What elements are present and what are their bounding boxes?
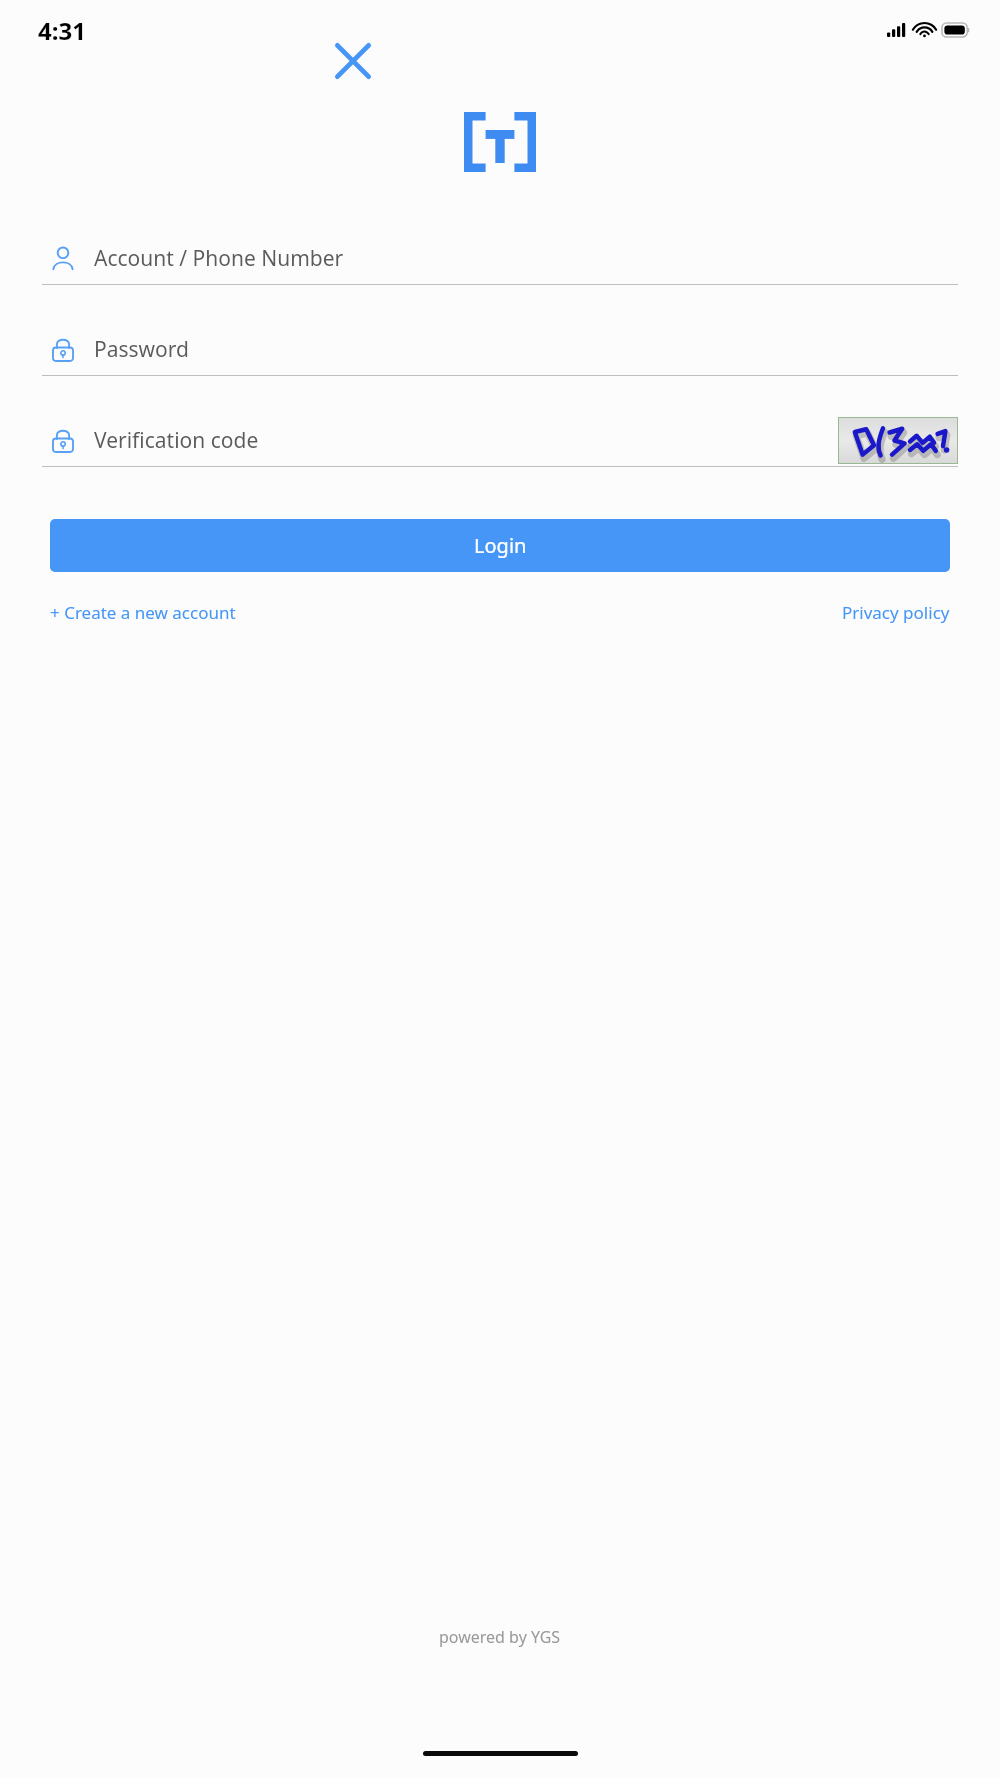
button[interactable]: Login — [50, 519, 950, 572]
staticText: + Create a new account — [50, 601, 236, 624]
staticText: Login — [474, 532, 527, 559]
staticText: Verification code — [94, 426, 259, 455]
button[interactable]: Account / Phone Number — [42, 232, 958, 285]
staticText: 4:31 — [38, 14, 86, 47]
button[interactable]: Privacy policy — [842, 595, 950, 630]
staticText: powered by YGS — [439, 1626, 561, 1648]
staticText: Password — [94, 335, 189, 364]
button[interactable]: Refresh verification code — [838, 417, 958, 464]
staticText: Account / Phone Number — [94, 244, 344, 273]
button[interactable]: Close — [330, 38, 376, 84]
button[interactable]: + Create a new account — [50, 595, 236, 630]
button[interactable]: Verification code — [42, 414, 958, 467]
button[interactable]: Password — [42, 323, 958, 376]
staticText: Privacy policy — [842, 601, 950, 624]
